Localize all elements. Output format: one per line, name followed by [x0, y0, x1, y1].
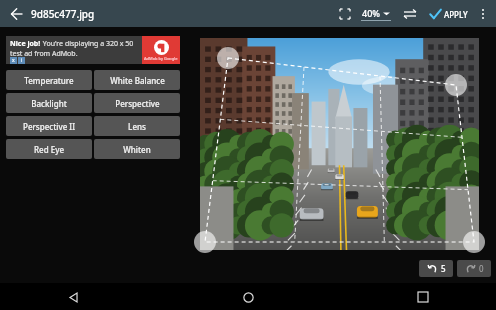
button[interactable]: Back	[60, 284, 86, 310]
staticText: Red Eye	[34, 144, 64, 155]
button[interactable]: Redo	[457, 260, 491, 277]
staticText: Lens	[128, 121, 146, 132]
staticText: White Balance	[110, 75, 165, 86]
staticText: You're displaying a 320 x 50	[41, 39, 134, 49]
staticText: Perspective II	[23, 121, 75, 132]
staticText: i	[21, 57, 23, 64]
staticText: Whiten	[123, 144, 151, 155]
button[interactable]: Whiten	[94, 139, 180, 159]
button[interactable]: Home	[235, 284, 261, 310]
button[interactable]: Red Eye	[6, 139, 92, 159]
staticText: 5	[441, 263, 446, 274]
button[interactable]: Nice job!	[6, 36, 180, 64]
button[interactable]: Compare	[398, 2, 422, 26]
staticText: 9d85c477.jpg	[31, 7, 95, 21]
button[interactable]: 40%	[358, 7, 394, 21]
staticText: Perspective	[115, 98, 160, 109]
staticText: x	[12, 57, 15, 64]
button[interactable]: Undo	[419, 260, 453, 277]
button[interactable]: More options	[473, 4, 493, 24]
staticText: Temperature	[24, 75, 74, 86]
staticText: 0	[479, 263, 484, 274]
button[interactable]: APPLY	[426, 7, 470, 21]
button[interactable]: Perspective	[94, 93, 180, 113]
button[interactable]: Temperature	[6, 70, 92, 90]
button[interactable]: Back	[6, 3, 28, 25]
staticText: APPLY	[444, 9, 468, 20]
button[interactable]: Lens	[94, 116, 180, 136]
staticText: AdMob by Google	[144, 56, 178, 61]
button[interactable]: Recent apps	[410, 284, 436, 310]
button[interactable]: White Balance	[94, 70, 180, 90]
button[interactable]: Perspective II	[6, 116, 92, 136]
staticText: Nice job!	[10, 39, 41, 49]
button[interactable]: Backlight	[6, 93, 92, 113]
staticText: Backlight	[31, 98, 67, 109]
button[interactable]: Fullscreen	[332, 1, 358, 27]
staticText: test ad from AdMob.	[10, 49, 78, 59]
staticText: 40%	[362, 7, 380, 19]
